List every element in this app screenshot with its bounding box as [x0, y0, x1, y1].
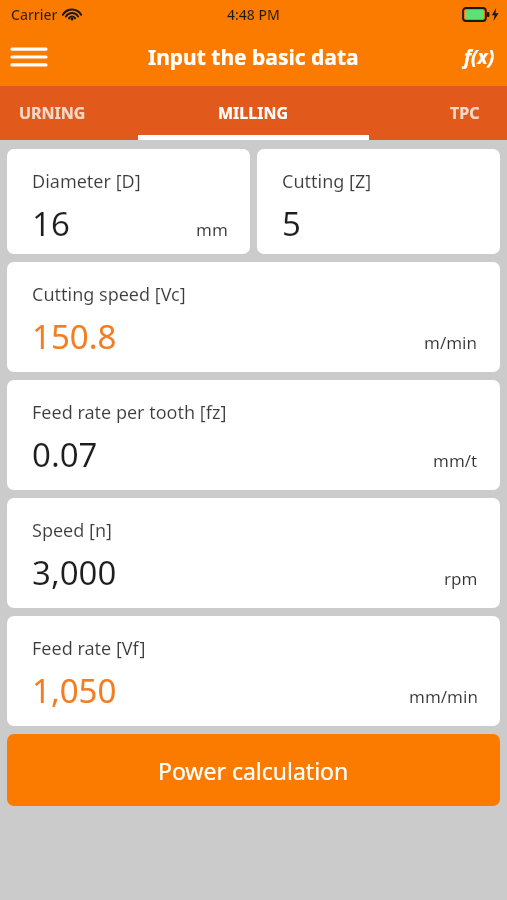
staticText: f(x) [464, 44, 495, 70]
button[interactable]: Feed rate [Vf] [7, 616, 500, 726]
staticText: 0.07 [32, 432, 98, 477]
staticText: URNING [19, 102, 86, 124]
button[interactable]: Diameter [D] [7, 149, 250, 254]
button[interactable]: Power calculation [7, 734, 500, 806]
button[interactable]: Cutting [Z] [257, 149, 500, 254]
staticText: 16 [32, 201, 70, 246]
staticText: Power calculation [158, 755, 349, 786]
staticText: Speed [n] [32, 518, 112, 543]
button[interactable]: TPC [338, 86, 507, 140]
button[interactable]: MILLING [169, 86, 338, 140]
button[interactable]: Feed rate per tooth [fz] [7, 380, 500, 490]
staticText: Diameter [D] [32, 169, 141, 194]
staticText: rpm [444, 567, 478, 590]
staticText: Carrier [11, 5, 58, 24]
staticText: mm [196, 218, 228, 241]
staticText: Cutting speed [Vc] [32, 282, 186, 307]
staticText: Feed rate per tooth [fz] [32, 400, 227, 425]
staticText: Cutting [Z] [282, 169, 372, 194]
staticText: mm/t [433, 449, 478, 472]
staticText: 1,050 [32, 668, 117, 713]
button[interactable]: f(x) [451, 28, 507, 86]
button[interactable]: URNING [0, 86, 169, 140]
staticText: m/min [424, 331, 478, 354]
staticText: 5 [282, 201, 301, 246]
staticText: 3,000 [32, 550, 117, 595]
staticText: mm/min [409, 685, 478, 708]
staticText: Feed rate [Vf] [32, 636, 146, 661]
staticText: Input the basic data [148, 43, 359, 72]
staticText: MILLING [218, 102, 289, 124]
button[interactable]: Speed [n] [7, 498, 500, 608]
staticText: TPC [450, 102, 480, 124]
button[interactable]: Open navigation menu [0, 28, 58, 86]
staticText: 4:48 PM [227, 5, 280, 24]
button[interactable]: Cutting speed [Vc] [7, 262, 500, 372]
staticText: 150.8 [32, 314, 117, 359]
